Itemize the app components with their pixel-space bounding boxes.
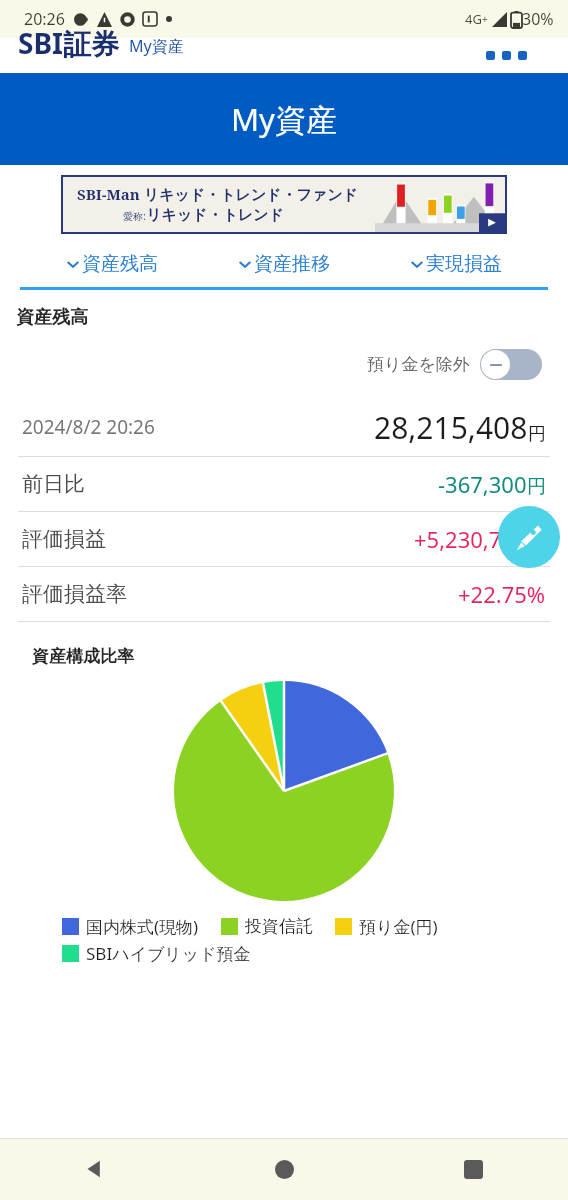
staticText: 投資信託 (245, 916, 313, 937)
staticText: 資産残高 (16, 306, 88, 329)
button[interactable]: 前日比 (0, 457, 568, 511)
staticText: 預り金(円) (359, 915, 438, 938)
button[interactable]: Recents (447, 1143, 499, 1195)
button[interactable]: Quick action (498, 506, 560, 568)
button[interactable]: 預り金を除外 (363, 345, 546, 384)
staticText: 預り金を除外 (367, 354, 470, 375)
button[interactable]: 2024/8/2 20:26 (0, 398, 568, 456)
button[interactable]: More options (480, 45, 533, 66)
staticText: My資産 (231, 98, 337, 140)
button[interactable]: SBI-Man リキッド・トレンド・ファンド (63, 177, 505, 232)
staticText: 評価損益率 (22, 581, 127, 607)
staticText: +5,230,754 (414, 524, 527, 554)
staticText: 28,215,408 (374, 407, 528, 448)
staticText: 4G (465, 10, 482, 28)
staticText: リキッド・トレンド (146, 206, 284, 225)
staticText: 愛称: (123, 209, 146, 223)
staticText: +22.75% (458, 579, 546, 609)
button[interactable]: 実現損益 (404, 246, 508, 282)
staticText: 円 (528, 423, 546, 446)
button[interactable]: Back (69, 1143, 121, 1195)
staticText: + (482, 12, 488, 26)
staticText: SBI-Man リキッド・トレンド・ファンド (77, 184, 358, 204)
button[interactable]: 評価損益 (0, 512, 568, 566)
staticText: 資産構成比率 (32, 646, 134, 667)
staticText: 30% (522, 8, 554, 30)
button[interactable]: Home (258, 1143, 310, 1195)
staticText: 前日比 (22, 471, 85, 497)
button[interactable]: 資産推移 (232, 246, 336, 282)
staticText: 20:26 (24, 8, 65, 30)
staticText: 評価損益 (22, 526, 106, 552)
button[interactable]: 資産残高 (60, 246, 164, 282)
staticText: SBIハイブリッド預金 (86, 942, 251, 965)
staticText: -367,300 (438, 469, 527, 499)
staticText: 資産残高 (82, 252, 158, 276)
staticText: 2024/8/2 20:26 (22, 414, 155, 440)
staticText: 国内株式(現物) (86, 915, 199, 938)
staticText: 実現損益 (426, 252, 502, 276)
button[interactable]: 評価損益率 (0, 567, 568, 621)
staticText: SBI証券 (18, 24, 119, 59)
staticText: 資産推移 (254, 252, 330, 276)
staticText: 円 (527, 475, 546, 499)
staticText: My資産 (129, 35, 184, 57)
staticText: 円 (527, 530, 546, 554)
